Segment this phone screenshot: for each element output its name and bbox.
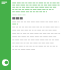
button[interactable]: Account [1,59,8,66]
